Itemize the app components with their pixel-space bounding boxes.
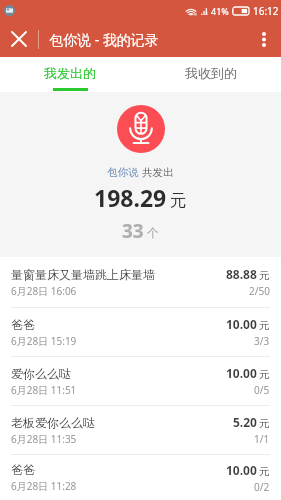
button[interactable]: 老板爱你么么哒 <box>0 406 281 454</box>
staticText: 16:12 <box>253 4 279 18</box>
staticText: 元 <box>259 417 270 430</box>
staticText: 爸爸 <box>11 317 35 332</box>
button[interactable]: More options <box>247 21 281 57</box>
button[interactable]: 爱你么么哒 <box>0 357 281 405</box>
staticText: 2/50 <box>249 284 270 298</box>
button[interactable]: 量窗量床又量墙跳上床量墙 <box>0 257 281 307</box>
staticText: 元 <box>259 269 270 282</box>
staticText: 元 <box>259 465 270 478</box>
staticText: 包你说 <box>107 166 139 179</box>
staticText: 1/1 <box>254 432 270 446</box>
button[interactable]: 爸爸 <box>0 455 281 500</box>
staticText: 爱你么么哒 <box>11 366 71 381</box>
staticText: 元 <box>259 368 270 381</box>
staticText: 量窗量床又量墙跳上床量墙 <box>11 267 155 282</box>
staticText: 3/3 <box>254 334 270 348</box>
staticText: 88.88 <box>226 266 257 282</box>
button[interactable]: 我发出的 <box>0 57 140 92</box>
staticText: 6月28日 15:19 <box>11 334 77 348</box>
staticText: 198.29 <box>94 182 167 213</box>
staticText: 10.00 <box>226 462 257 478</box>
staticText: 我收到的 <box>185 65 237 81</box>
staticText: 元 <box>259 319 270 332</box>
staticText: 41% <box>211 5 229 17</box>
staticText: 共发出 <box>142 166 174 179</box>
staticText: 6月28日 11:28 <box>11 479 77 493</box>
staticText: 老板爱你么么哒 <box>11 415 95 430</box>
staticText: 33 <box>122 218 144 244</box>
staticText: 个 <box>147 225 159 240</box>
button[interactable]: Close <box>0 21 38 57</box>
staticText: 6月28日 16:06 <box>11 284 77 298</box>
button[interactable]: 爸爸 <box>0 308 281 356</box>
staticText: 0/2 <box>254 480 270 494</box>
staticText: 5.20 <box>233 414 257 430</box>
staticText: 6月28日 11:35 <box>11 432 77 446</box>
staticText: 10.00 <box>226 365 257 381</box>
staticText: 元 <box>170 190 187 211</box>
staticText: 我发出的 <box>44 65 96 81</box>
staticText: 0/5 <box>254 383 270 397</box>
staticText: 爸爸 <box>11 462 35 477</box>
staticText: 10.00 <box>226 316 257 332</box>
staticText: 6月28日 11:51 <box>11 383 77 397</box>
staticText: 包你说 - 我的记录 <box>49 30 159 49</box>
button[interactable]: 我收到的 <box>140 57 281 92</box>
